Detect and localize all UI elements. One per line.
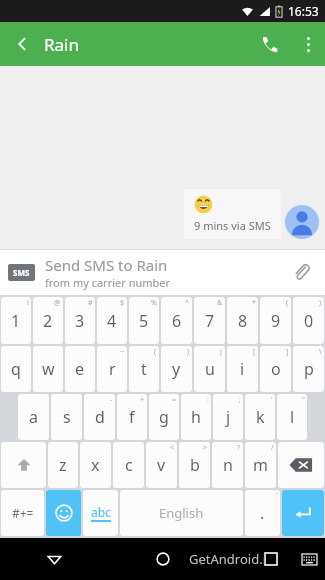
staticText: u [205,358,215,380]
staticText: 1 [11,310,21,332]
staticText: j [226,406,231,428]
button[interactable]: s [51,394,82,440]
button[interactable]: j [213,394,243,440]
staticText: abc [91,504,111,520]
button[interactable]: 5 [129,297,159,344]
button[interactable]: More options [291,22,325,66]
button[interactable]: Switch to abc [83,490,118,536]
button[interactable]: d [84,394,115,440]
button[interactable]: h [181,394,211,440]
button[interactable]: Home [109,538,217,580]
staticText: @ [54,298,61,308]
button[interactable]: t [129,346,159,392]
button[interactable]: 4 [97,297,127,344]
button[interactable]: z [48,442,78,488]
button[interactable]: m [245,442,276,488]
button[interactable]: f [117,394,147,440]
button[interactable]: w [33,346,63,392]
staticText: GetAndroid.i [189,550,266,568]
button[interactable]: 9 mins via SMS [194,195,271,233]
button[interactable]: r [97,346,127,392]
staticText: < [170,443,175,453]
staticText: * [252,298,256,308]
staticText: from my carrier number [45,275,171,290]
button[interactable]: g [149,394,179,440]
staticText: #+= [12,505,34,521]
staticText: ] [286,347,289,357]
button[interactable]: 9 [260,297,291,344]
staticText: ? [237,443,241,453]
button[interactable]: e [65,346,95,392]
button[interactable]: 8 [227,297,258,344]
button[interactable]: Shift [1,442,46,488]
staticText: n [223,454,233,476]
staticText: 7 [205,310,215,332]
button[interactable]: o [260,346,291,392]
button[interactable]: Back [0,22,44,66]
button[interactable]: #+= [1,490,44,536]
button[interactable]: p [293,346,324,392]
staticText: t [141,358,147,380]
button[interactable]: y [161,346,192,392]
staticText: Rain [44,33,247,56]
button[interactable]: Change keyboard [302,554,317,565]
staticText: k [256,406,265,428]
button[interactable]: 2 [33,297,63,344]
button[interactable]: Emoji [46,490,81,536]
button[interactable]: x [80,442,111,488]
staticText: 5 [139,310,149,332]
staticText: w [42,358,55,380]
staticText: h [191,406,201,428]
staticText: 3 [75,310,85,332]
staticText: + [140,395,145,405]
staticText: = [172,395,177,405]
button[interactable]: u [194,346,225,392]
staticText: 6 [172,310,182,332]
staticText: b [190,454,200,476]
staticText: x [91,454,100,476]
button[interactable]: 6 [161,297,192,344]
button[interactable]: English [120,490,243,536]
button[interactable]: k [245,394,275,440]
staticText: s [63,406,71,428]
staticText: c [125,454,133,476]
button[interactable]: q [1,346,31,392]
button[interactable]: 0 [293,297,324,344]
button[interactable]: 3 [65,297,95,344]
button[interactable]: Contact avatar [285,205,319,239]
staticText: f [129,406,135,428]
staticText: 2 [43,310,53,332]
staticText: SMS [13,267,30,278]
staticText: o [271,358,281,380]
staticText: e [75,358,85,380]
button[interactable]: 7 [194,297,225,344]
button[interactable]: Recents [217,538,325,580]
button[interactable]: a [18,394,49,440]
button[interactable]: b [179,442,210,488]
button[interactable]: Backspace [278,442,324,488]
staticText: & [217,298,223,308]
button[interactable]: Back [0,538,109,580]
button[interactable]: l [277,394,307,440]
button[interactable]: n [212,442,243,488]
staticText: English [159,504,204,522]
staticText: i [240,358,245,380]
button[interactable]: Send SMS to Rain [45,255,285,290]
staticText: ' [276,491,278,501]
button[interactable]: Attach [285,256,317,288]
button[interactable]: c [113,442,144,488]
staticText: [ [253,347,256,357]
staticText: 0 [304,310,314,332]
staticText: ) [319,298,322,308]
button[interactable]: v [146,442,177,488]
button[interactable]: i [227,346,258,392]
button[interactable]: Enter [282,490,324,536]
staticText: | [219,347,223,357]
button[interactable]: Call [247,22,291,66]
staticText: 9 mins via SMS [194,218,271,233]
staticText: \ [319,347,322,357]
button[interactable]: . [245,490,280,536]
button[interactable]: SMS [13,267,30,278]
staticText: g [159,406,169,428]
button[interactable]: 1 [1,297,31,344]
